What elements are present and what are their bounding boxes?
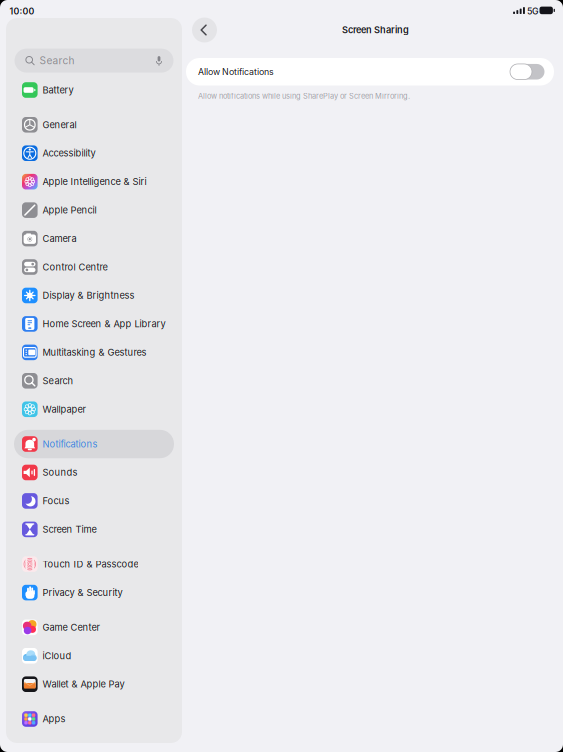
staticText: Sounds xyxy=(42,467,77,478)
button[interactable]: Apps xyxy=(14,705,174,733)
staticText: Allow notifications while using SharePla… xyxy=(198,91,410,100)
staticText: Search xyxy=(39,54,74,67)
button[interactable]: Wallet & Apple Pay xyxy=(14,670,174,698)
staticText: Accessibility xyxy=(42,148,95,159)
staticText: iCloud xyxy=(42,650,71,661)
staticText: 5G xyxy=(527,6,539,17)
staticText: Multitasking & Gestures xyxy=(42,347,146,358)
button[interactable]: Apple Pencil xyxy=(14,196,174,224)
button[interactable]: Notifications xyxy=(14,430,174,458)
staticText: Battery xyxy=(42,84,73,96)
button[interactable]: Privacy & Security xyxy=(14,578,174,607)
button[interactable]: Battery xyxy=(14,76,174,104)
button[interactable]: Screen Time xyxy=(14,515,174,543)
staticText: Control Centre xyxy=(42,261,107,273)
button[interactable]: General xyxy=(14,110,174,139)
staticText: Notifications xyxy=(42,438,97,450)
staticText: Apps xyxy=(42,713,65,725)
button[interactable]: Home Screen & App Library xyxy=(14,310,174,338)
staticText: Apple Pencil xyxy=(42,204,96,216)
button[interactable]: Control Centre xyxy=(14,253,174,281)
staticText: Game Center xyxy=(42,622,100,633)
button[interactable]: Accessibility xyxy=(14,139,174,167)
button[interactable]: Display & Brightness xyxy=(14,281,174,310)
staticText: General xyxy=(42,119,76,130)
button[interactable]: Allow Notifications xyxy=(186,58,554,85)
button[interactable]: Camera xyxy=(14,224,174,253)
staticText: Allow Notifications xyxy=(198,66,274,77)
staticText: Focus xyxy=(42,495,69,507)
button[interactable]: Wallpaper xyxy=(14,395,174,423)
button[interactable]: Search xyxy=(14,367,174,395)
button[interactable]: iCloud xyxy=(14,641,174,670)
staticText: Apple Intelligence & Siri xyxy=(42,176,146,187)
staticText: Touch ID & Passcode xyxy=(42,558,138,570)
button[interactable]: Back xyxy=(192,17,217,42)
staticText: Search xyxy=(42,375,73,386)
button[interactable]: Touch ID & Passcode xyxy=(14,550,174,578)
staticText: 10:00 xyxy=(9,6,34,17)
button[interactable]: Apple Intelligence & Siri xyxy=(14,167,174,196)
staticText: Screen Time xyxy=(42,524,96,535)
button[interactable]: Game Center xyxy=(14,613,174,641)
staticText: Wallet & Apple Pay xyxy=(42,679,124,690)
staticText: Wallpaper xyxy=(42,404,86,415)
button[interactable]: Focus xyxy=(14,487,174,515)
staticText: Screen Sharing xyxy=(342,24,409,35)
button[interactable]: Sounds xyxy=(14,458,174,487)
staticText: Display & Brightness xyxy=(42,290,134,301)
staticText: Privacy & Security xyxy=(42,587,122,598)
staticText: Home Screen & App Library xyxy=(42,318,165,330)
staticText: Camera xyxy=(42,233,76,244)
button[interactable]: Multitasking & Gestures xyxy=(14,338,174,366)
